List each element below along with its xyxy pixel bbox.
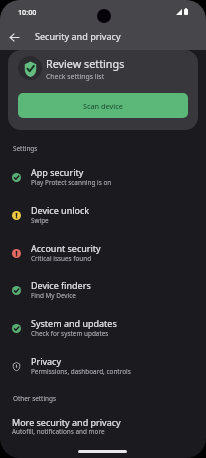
button[interactable]: Device finders <box>0 275 206 313</box>
button[interactable]: Review settings <box>8 50 198 130</box>
button[interactable]: Back <box>5 28 23 46</box>
staticText: Permissions, dashboard, controls <box>31 367 131 376</box>
button[interactable]: Scan device <box>18 93 188 118</box>
staticText: Check settings list <box>46 72 105 81</box>
button[interactable]: App security <box>0 162 206 200</box>
button[interactable]: Account security <box>0 238 206 276</box>
staticText: More security and privacy <box>12 416 121 428</box>
staticText: 10:00 <box>18 7 37 17</box>
staticText: Autofill, notifications and more <box>12 427 105 436</box>
staticText: Critical issues found <box>31 254 92 263</box>
button[interactable]: More security and privacy <box>0 412 206 442</box>
staticText: System and updates <box>31 317 117 329</box>
staticText: Review settings <box>46 56 125 71</box>
button[interactable]: System and updates <box>0 313 206 351</box>
staticText: Account security <box>31 242 101 254</box>
staticText: App security <box>31 166 84 178</box>
staticText: Play Protect scanning is on <box>31 178 112 187</box>
staticText: Settings <box>13 144 38 153</box>
button[interactable]: Privacy <box>0 351 206 389</box>
staticText: Check for system updates <box>31 329 109 338</box>
staticText: Security and privacy <box>35 30 121 42</box>
staticText: Device finders <box>31 279 91 291</box>
staticText: Scan device <box>83 101 123 111</box>
staticText: Other settings <box>13 394 57 403</box>
staticText: Device unlock <box>31 204 90 216</box>
button[interactable]: Device unlock <box>0 200 206 238</box>
staticText: Swipe <box>31 216 49 225</box>
staticText: Privacy <box>31 355 62 367</box>
staticText: Find My Device <box>31 291 76 300</box>
